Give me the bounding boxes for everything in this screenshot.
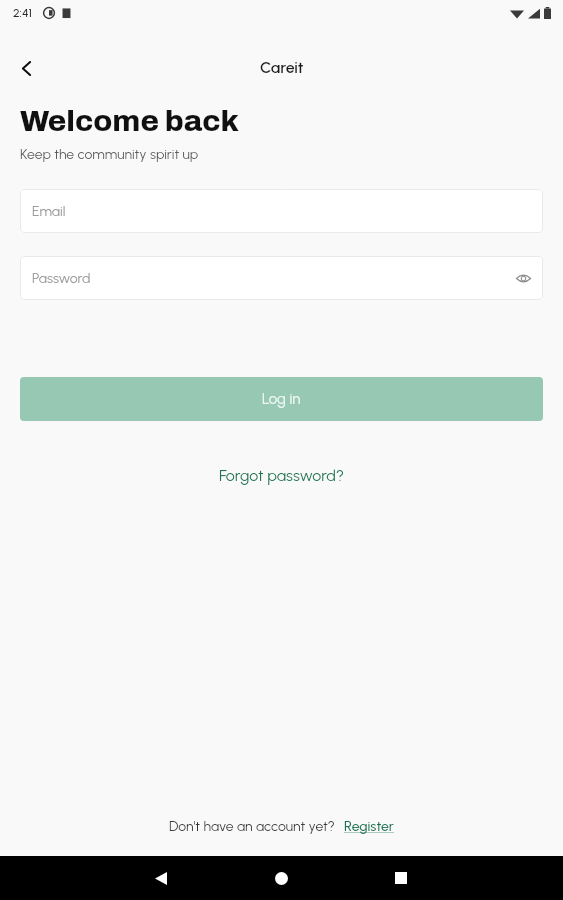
button[interactable]: Back <box>8 50 44 86</box>
staticText: Careit <box>260 58 304 77</box>
button[interactable]: Email <box>20 189 543 233</box>
staticText: Password <box>32 270 91 287</box>
staticText: Email <box>32 203 66 220</box>
staticText: Welcome back <box>20 105 239 138</box>
staticText: 2:41 <box>13 6 32 20</box>
button[interactable]: Log in <box>20 377 543 421</box>
staticText: Don't have an account yet? <box>169 818 335 835</box>
staticText: Keep the community spirit up <box>20 146 199 163</box>
staticText: Log in <box>262 390 301 408</box>
button[interactable]: Show password <box>509 264 537 292</box>
button[interactable]: Back <box>131 856 191 900</box>
button[interactable]: Recents <box>371 856 431 900</box>
staticText: Forgot password? <box>219 466 345 485</box>
button[interactable]: Register <box>344 818 394 835</box>
button[interactable]: Home <box>251 856 311 900</box>
button[interactable]: Forgot password? <box>209 462 355 489</box>
button[interactable]: Password <box>20 256 543 300</box>
staticText: Register <box>344 818 394 835</box>
